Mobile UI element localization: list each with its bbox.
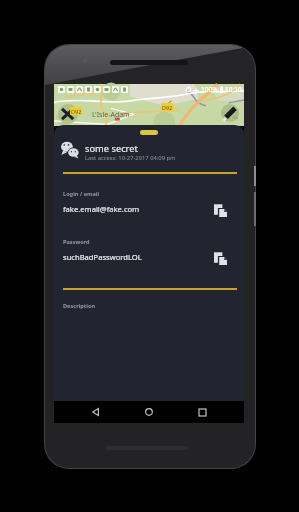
staticText: Last access: 10-27-2017 04:09 pm — [85, 154, 176, 162]
staticText: Description — [63, 302, 96, 310]
button[interactable]: Copy — [210, 200, 231, 221]
staticText: Login / email — [63, 190, 100, 198]
button[interactable]: Close marker — [58, 104, 78, 124]
button[interactable]: Edit — [221, 104, 239, 122]
staticText: D922 — [162, 104, 174, 112]
staticText: L'Isle-Adam — [92, 110, 130, 120]
button[interactable]: Copy — [210, 248, 231, 269]
staticText: Password — [63, 238, 90, 246]
button[interactable]: Recents — [191, 401, 213, 423]
button[interactable]: Login / email — [54, 186, 244, 220]
staticText: fake.email@fake.com — [63, 204, 140, 214]
button[interactable]: Home — [138, 401, 160, 423]
staticText: 16:10 — [225, 85, 242, 94]
button[interactable]: Password — [54, 234, 244, 268]
button[interactable]: Back — [85, 401, 107, 423]
staticText: some secret — [85, 142, 138, 155]
staticText: D922 — [71, 108, 83, 116]
staticText: 100% — [201, 85, 218, 94]
staticText: suchBadPasswordLOL — [63, 252, 142, 262]
